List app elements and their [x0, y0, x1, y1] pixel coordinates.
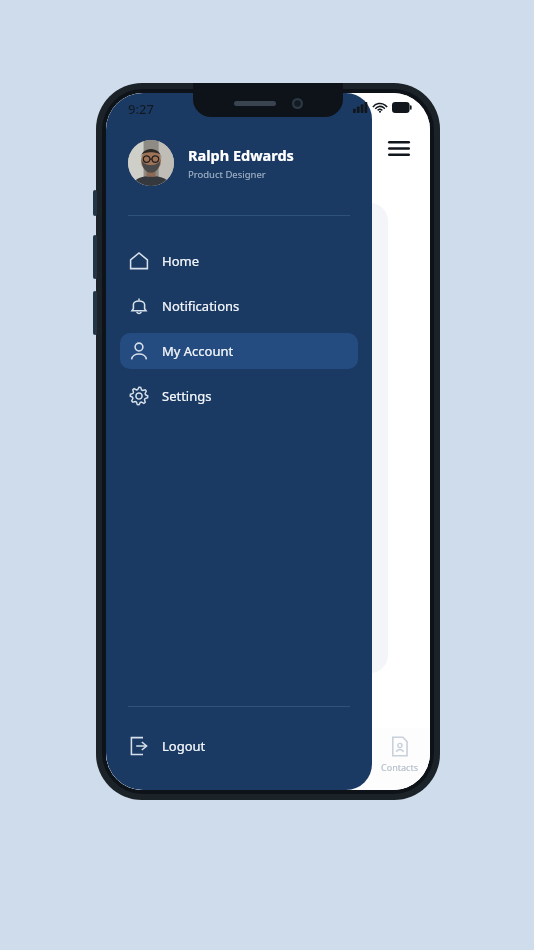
- staticText: Ralph Edwards: [188, 145, 294, 165]
- button[interactable]: Notifications: [120, 288, 358, 324]
- button[interactable]: Logout: [120, 728, 358, 764]
- staticText: 9:27: [128, 100, 154, 118]
- button[interactable]: Contacts: [368, 736, 430, 773]
- button[interactable]: My Account: [120, 333, 358, 369]
- button[interactable]: Home: [120, 243, 358, 279]
- staticText: Home: [162, 252, 199, 270]
- staticText: Notifications: [162, 297, 240, 315]
- staticText: Contacts: [381, 761, 418, 773]
- staticText: Settings: [162, 387, 212, 405]
- button[interactable]: Ralph Edwards: [128, 140, 354, 186]
- button[interactable]: Settings: [120, 378, 358, 414]
- staticText: Product Designer: [188, 168, 266, 181]
- button[interactable]: Open menu: [382, 131, 416, 165]
- staticText: Logout: [162, 737, 206, 755]
- staticText: My Account: [162, 342, 234, 360]
